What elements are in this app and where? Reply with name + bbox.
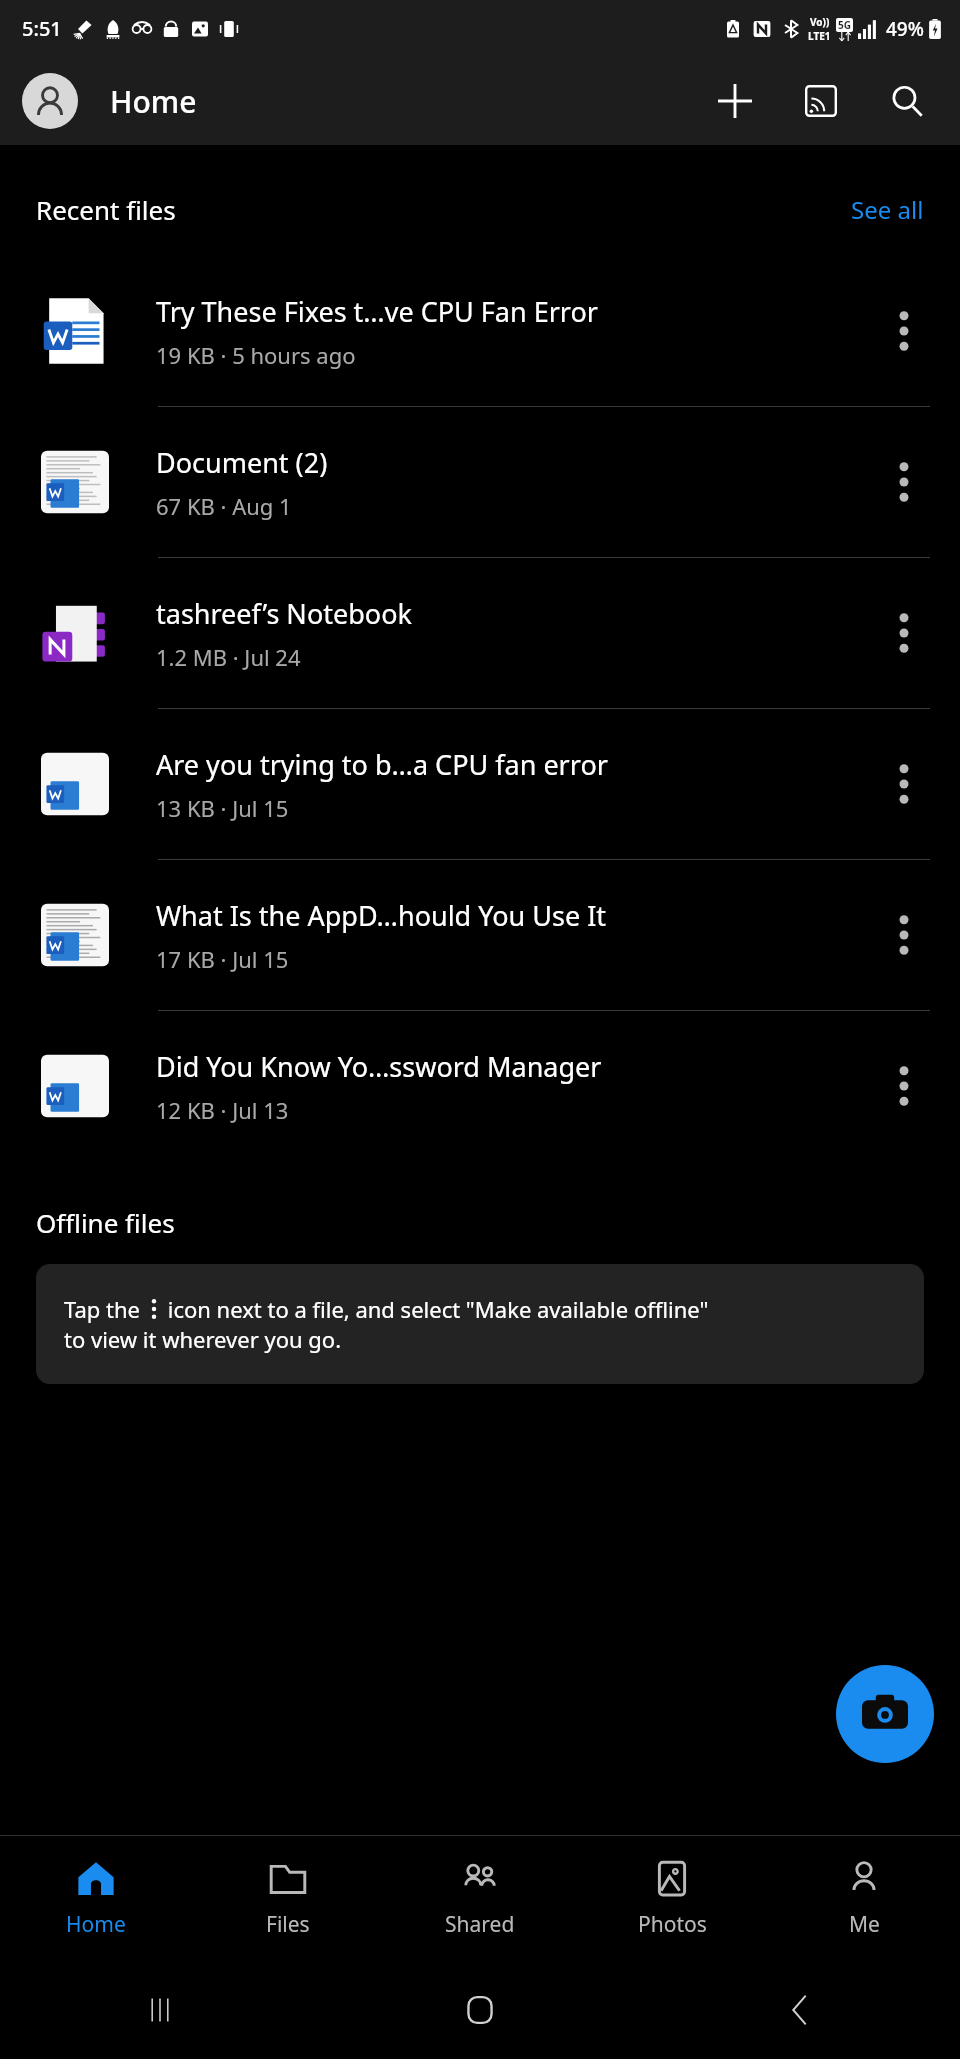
staticText: 49% xyxy=(886,16,924,42)
button[interactable]: Home xyxy=(0,1848,192,1949)
staticText: tashreef’s Notebook xyxy=(156,595,412,632)
staticText: 1.2 MB · Jul 24 xyxy=(156,642,301,672)
staticText: LTE1 xyxy=(808,29,831,43)
button[interactable]: Shared xyxy=(384,1848,576,1949)
staticText: Home xyxy=(66,1910,126,1939)
staticText: 67 KB · Aug 1 xyxy=(156,491,292,521)
staticText: Tap the xyxy=(64,1294,146,1324)
button[interactable]: Files xyxy=(192,1848,384,1949)
button[interactable]: More options xyxy=(872,601,936,665)
button[interactable]: More options xyxy=(872,903,936,967)
button[interactable]: Photos xyxy=(576,1848,768,1949)
staticText: Recent files xyxy=(36,192,176,227)
button[interactable]: Document (2) xyxy=(0,407,960,558)
staticText: Shared xyxy=(445,1910,515,1939)
button[interactable]: More options xyxy=(872,450,936,514)
button[interactable]: Home xyxy=(320,1960,640,2059)
staticText: What Is the AppD…hould You Use It xyxy=(156,897,607,934)
staticText: 13 KB · Jul 15 xyxy=(156,793,289,823)
button[interactable]: Account xyxy=(22,73,78,129)
staticText: Did You Know Yo…ssword Manager xyxy=(156,1048,602,1085)
staticText: Me xyxy=(849,1910,880,1939)
button[interactable]: More options xyxy=(872,299,936,363)
staticText: Home xyxy=(110,81,197,122)
button[interactable]: What Is the AppD…hould You Use It xyxy=(0,860,960,1011)
staticText: icon next to a file, and select "Make av… xyxy=(162,1294,709,1324)
button[interactable]: Back xyxy=(640,1960,960,2059)
staticText: 5G xyxy=(838,18,851,32)
staticText: to view it wherever you go. xyxy=(64,1324,342,1354)
button[interactable]: More options xyxy=(872,752,936,816)
button[interactable]: Me xyxy=(768,1848,960,1949)
button[interactable]: Did You Know Yo…ssword Manager xyxy=(0,1011,960,1161)
staticText: Are you trying to b…a CPU fan error xyxy=(156,746,608,783)
button[interactable]: Are you trying to b…a CPU fan error xyxy=(0,709,960,860)
staticText: Try These Fixes t…ve CPU Fan Error xyxy=(156,293,598,330)
button[interactable]: Recents xyxy=(0,1960,320,2059)
button[interactable]: Tap the xyxy=(36,1264,924,1384)
button[interactable]: More options xyxy=(872,1054,936,1118)
staticText: See all xyxy=(851,193,924,226)
staticText: 19 KB · 5 hours ago xyxy=(156,340,356,370)
button[interactable]: Add xyxy=(704,70,766,132)
staticText: Photos xyxy=(638,1910,707,1939)
staticText: 17 KB · Jul 15 xyxy=(156,944,289,974)
staticText: Files xyxy=(266,1910,310,1939)
button[interactable]: Search xyxy=(876,70,938,132)
staticText: 5:51 xyxy=(22,15,62,42)
staticText: 12 KB · Jul 13 xyxy=(156,1095,289,1125)
button[interactable]: tashreef’s Notebook xyxy=(0,558,960,709)
staticText: Vo)) xyxy=(810,15,830,29)
button[interactable]: Try These Fixes t…ve CPU Fan Error xyxy=(0,256,960,407)
staticText: Offline files xyxy=(36,1205,175,1240)
button[interactable]: Cast xyxy=(790,70,852,132)
button[interactable]: See all xyxy=(845,189,930,230)
button[interactable]: Scan with camera xyxy=(836,1665,934,1763)
staticText: Document (2) xyxy=(156,444,328,481)
